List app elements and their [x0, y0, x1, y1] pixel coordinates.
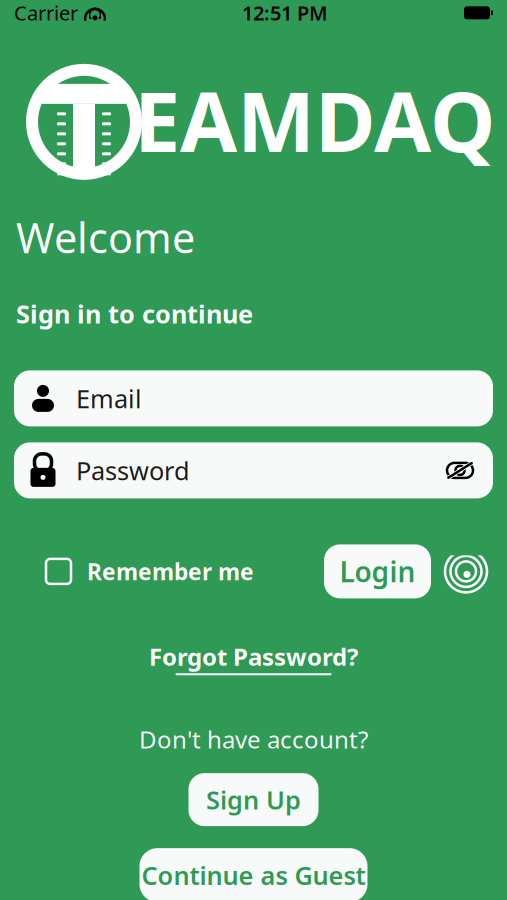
staticText: Remember me [87, 556, 254, 586]
button[interactable]: Password [14, 442, 493, 498]
staticText: Welcome [16, 210, 195, 265]
staticText: Continue as Guest [141, 858, 365, 892]
staticText: Password [76, 454, 190, 487]
staticText: Sign Up [206, 783, 301, 816]
staticText: Don't have account? [139, 723, 368, 755]
staticText: 12:51 PM [242, 0, 328, 26]
staticText: EAMDAQ [134, 65, 495, 175]
staticText: Sign in to continue [16, 297, 253, 330]
button[interactable]: Email [14, 370, 493, 426]
button[interactable]: Continue as Guest [139, 848, 367, 900]
staticText: Carrier [14, 0, 78, 26]
staticText: Forgot Password? [149, 640, 358, 672]
button[interactable]: Sign Up [188, 773, 318, 826]
button[interactable]: Remember me [46, 548, 254, 594]
button[interactable]: Forgot Password? [139, 634, 368, 681]
button[interactable]: Sign in with fingerprint [431, 548, 489, 594]
staticText: Email [76, 382, 142, 415]
button[interactable]: Login [324, 544, 431, 598]
staticText: Login [339, 553, 415, 590]
